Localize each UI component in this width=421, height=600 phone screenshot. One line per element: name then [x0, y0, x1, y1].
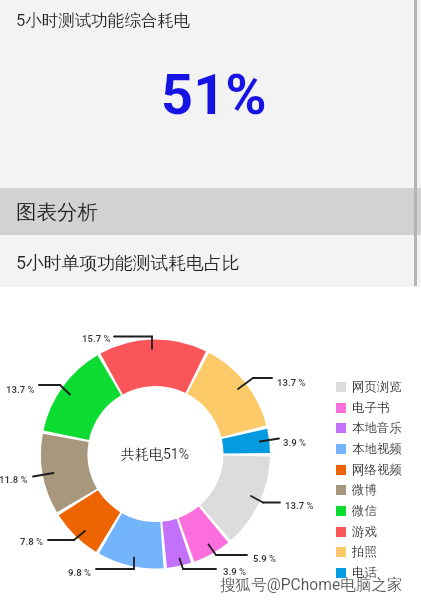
staticText: 13.7 % — [277, 377, 306, 388]
staticText: 5小时单项功能测试耗电占比 — [16, 252, 240, 274]
button[interactable]: 网页浏览 — [336, 376, 404, 397]
staticText: 微信 — [352, 503, 377, 519]
button[interactable]: 本地音乐 — [336, 417, 404, 438]
staticText: 本地视频 — [352, 441, 402, 457]
button[interactable]: 本地视频 — [336, 438, 404, 459]
button[interactable]: 电子书 — [336, 397, 404, 418]
staticText: 拍照 — [352, 544, 377, 560]
staticText: 共耗电51% — [121, 446, 189, 464]
staticText: 电话 — [352, 565, 377, 581]
staticText: 51% — [161, 62, 267, 128]
staticText: 网络视频 — [352, 462, 402, 478]
staticText: 11.8 % — [0, 474, 28, 485]
staticText: 13.7 % — [285, 500, 314, 511]
staticText: 7.8 % — [20, 536, 44, 547]
button[interactable]: 网络视频 — [336, 459, 404, 480]
staticText: 网页浏览 — [352, 379, 402, 395]
staticText: 图表分析 — [16, 199, 98, 225]
staticText: 3.9 % — [223, 566, 247, 577]
button[interactable]: 游戏 — [336, 521, 404, 542]
button[interactable]: 拍照 — [336, 541, 404, 562]
button[interactable]: 微博 — [336, 479, 404, 500]
staticText: 15.7 % — [82, 333, 111, 344]
button[interactable]: 图表分析 — [0, 188, 421, 235]
staticText: 电子书 — [352, 400, 390, 416]
button[interactable]: 微信 — [336, 500, 404, 521]
staticText: 搜狐号@PChome电脑之家 — [220, 575, 403, 595]
staticText: 微博 — [352, 482, 377, 498]
staticText: 本地音乐 — [352, 420, 402, 436]
staticText: 5.9 % — [253, 553, 277, 564]
button[interactable]: 电话 — [336, 562, 404, 583]
staticText: 5小时测试功能综合耗电 — [16, 10, 191, 31]
staticText: 游戏 — [352, 524, 377, 540]
staticText: 9.8 % — [68, 567, 92, 578]
staticText: 13.7 % — [6, 384, 35, 395]
staticText: 3.9 % — [283, 437, 307, 448]
